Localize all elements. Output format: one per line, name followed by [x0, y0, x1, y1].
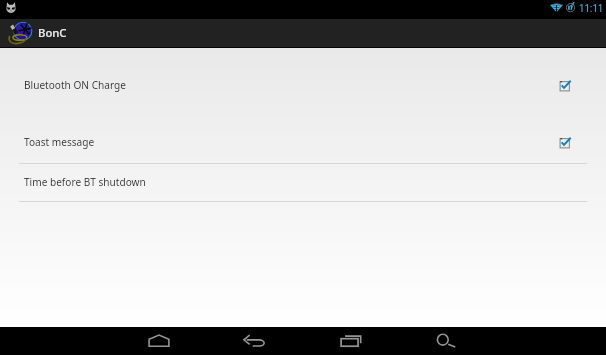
staticText: BonC: [38, 25, 67, 40]
staticText: Toast message: [24, 135, 95, 149]
button[interactable]: Search: [425, 327, 469, 355]
staticText: 11:11: [579, 2, 604, 15]
staticText: Bluetooth ON Charge: [24, 78, 126, 92]
button[interactable]: Home: [137, 327, 181, 355]
button[interactable]: Toast message: [0, 123, 606, 163]
button[interactable]: Bluetooth ON Charge: [0, 48, 606, 123]
staticText: Time before BT shutdown: [24, 175, 146, 189]
button[interactable]: Back: [232, 327, 276, 355]
button[interactable]: Recent apps: [329, 327, 373, 355]
button[interactable]: Time before BT shutdown: [0, 164, 606, 201]
